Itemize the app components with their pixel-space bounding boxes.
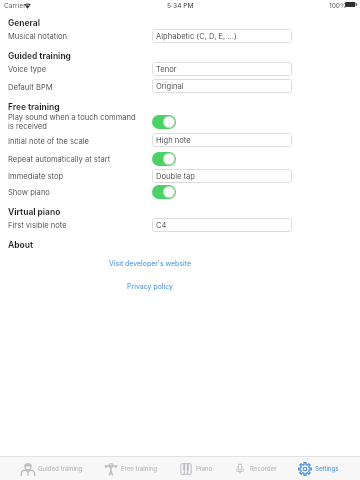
staticText: 5:34 PM (167, 2, 194, 10)
staticText: Alphabetic (C, D, E, ...) (156, 32, 237, 41)
button[interactable]: Toggle setting (152, 185, 176, 199)
staticText: First visible note (8, 221, 67, 230)
staticText: Immediate stop (8, 172, 64, 181)
button[interactable]: Visit developer's website (109, 259, 191, 267)
staticText: Virtual piano (8, 207, 61, 217)
staticText: Carrier (4, 2, 26, 10)
staticText: Tenor (156, 65, 177, 74)
button[interactable]: Double tap (152, 169, 292, 183)
staticText: is received (8, 122, 47, 131)
staticText: Guided training (38, 465, 83, 472)
staticText: 100% (329, 2, 347, 10)
staticText: Initial note of the scale (8, 137, 89, 146)
staticText: Original (156, 82, 184, 91)
staticText: C4 (156, 221, 167, 230)
button[interactable]: Toggle setting (152, 152, 176, 166)
button[interactable]: Tenor (152, 62, 292, 76)
button[interactable]: High note (152, 133, 292, 147)
button[interactable]: Toggle setting (152, 115, 176, 129)
button[interactable]: Free training (104, 457, 158, 480)
staticText: Voice type (8, 65, 47, 74)
staticText: Piano (196, 465, 213, 472)
staticText: Recorder (250, 465, 277, 472)
staticText: High note (156, 136, 191, 145)
button[interactable]: Settings (298, 457, 339, 480)
button[interactable]: Piano (179, 457, 213, 480)
staticText: About (8, 240, 33, 250)
staticText: Visit developer's website (109, 259, 191, 267)
staticText: General (8, 18, 40, 28)
staticText: Free training (8, 102, 60, 112)
button[interactable]: Recorder (233, 457, 277, 480)
staticText: Settings (315, 465, 339, 472)
staticText: Repeat automatically at start (8, 155, 111, 164)
button[interactable]: Guided training (21, 457, 83, 480)
button[interactable]: Alphabetic (C, D, E, ...) (152, 29, 292, 43)
staticText: Play sound when a touch command (8, 113, 136, 122)
button[interactable]: Privacy policy (127, 282, 173, 290)
staticText: Default BPM (8, 83, 53, 92)
staticText: Privacy policy (127, 282, 173, 290)
staticText: Double tap (156, 172, 196, 181)
staticText: Guided training (8, 51, 71, 61)
staticText: Free training (121, 465, 158, 472)
staticText: Musical notation (8, 32, 68, 41)
button[interactable]: C4 (152, 218, 292, 232)
staticText: Show piano (8, 188, 50, 197)
button[interactable]: Original (152, 79, 292, 93)
